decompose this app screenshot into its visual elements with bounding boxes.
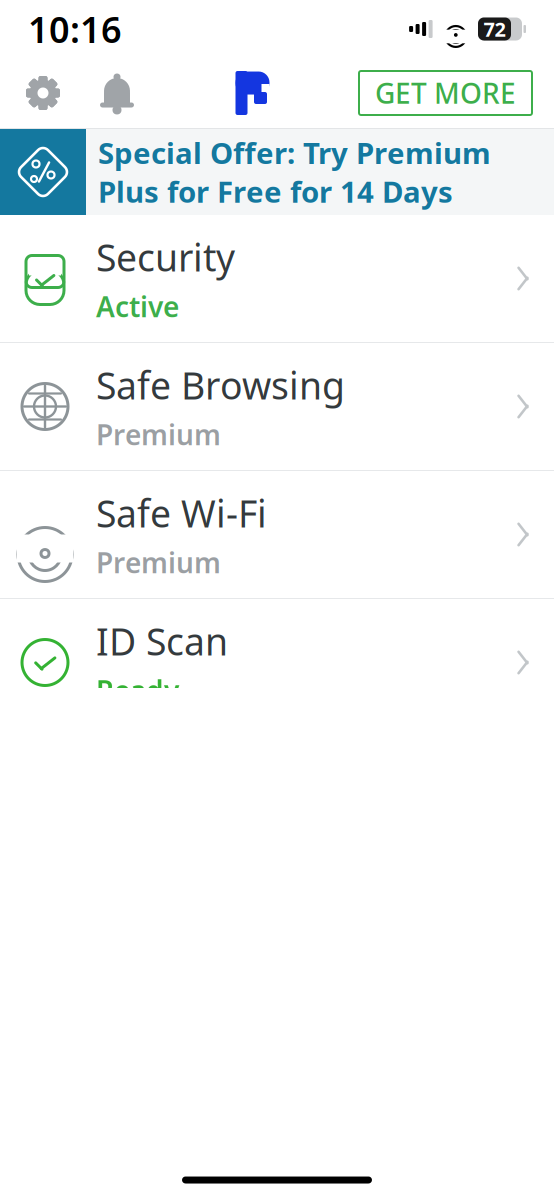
- button[interactable]: GET MORE: [359, 71, 532, 115]
- staticText: Ready: [96, 672, 179, 709]
- staticText: Safe Browsing: [96, 360, 345, 410]
- staticText: Special Offer: Try Premium Plus for Free…: [98, 133, 491, 211]
- staticText: Security: [96, 232, 235, 282]
- staticText: 10:16: [28, 5, 122, 53]
- button[interactable]: Settings: [14, 64, 72, 122]
- staticText: Active: [96, 288, 179, 325]
- staticText: Premium: [96, 544, 221, 581]
- staticText: ID Scan: [96, 616, 228, 666]
- staticText: GET MORE: [375, 74, 516, 112]
- staticText: Premium: [96, 416, 221, 453]
- button[interactable]: ID Scan: [0, 599, 554, 727]
- button[interactable]: Safe Wi-Fi: [0, 471, 554, 599]
- button[interactable]: Safe Browsing: [0, 343, 554, 471]
- button[interactable]: Notifications: [88, 64, 146, 122]
- staticText: 72: [483, 16, 505, 42]
- staticText: Safe Wi-Fi: [96, 488, 267, 538]
- button[interactable]: Special Offer: Try Premium Plus for Free…: [0, 129, 554, 215]
- button[interactable]: Security: [0, 215, 554, 343]
